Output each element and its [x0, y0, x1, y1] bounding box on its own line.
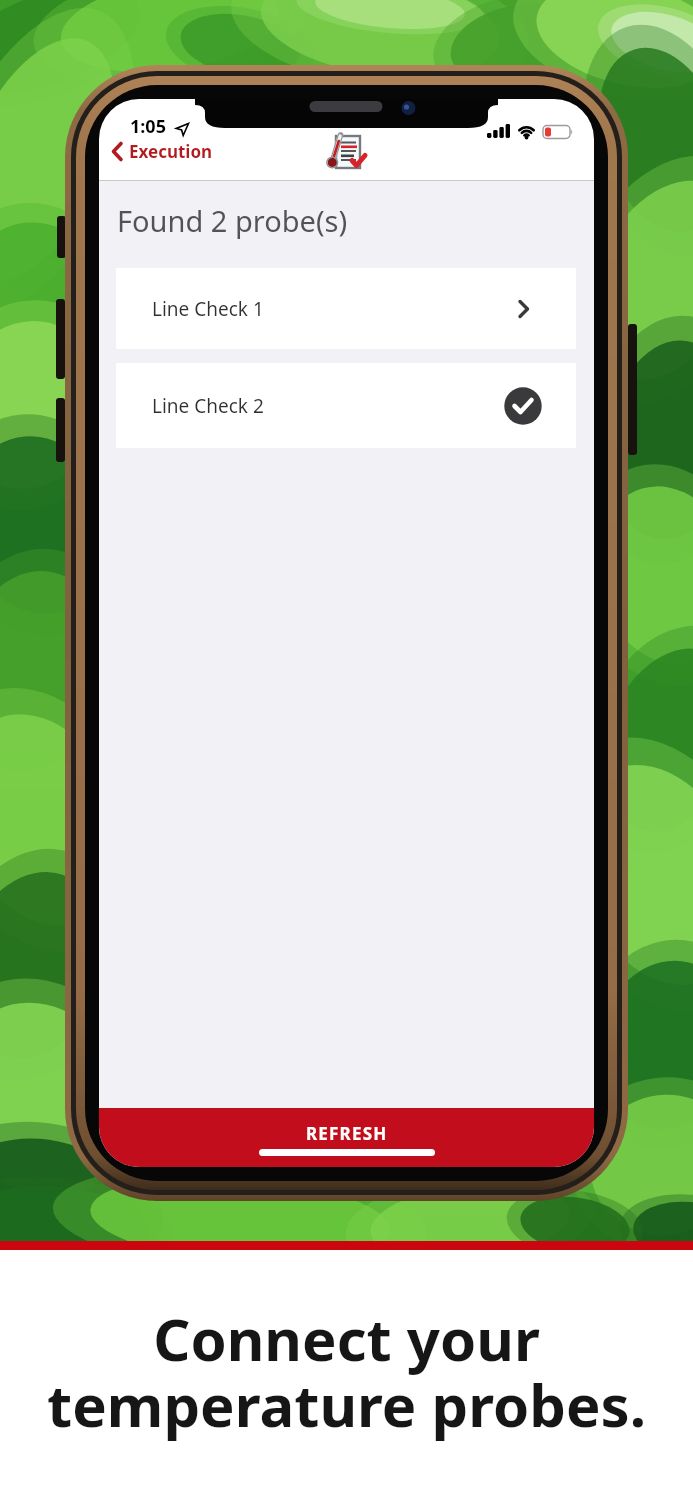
staticText: Line Check 1: [152, 296, 264, 322]
button[interactable]: Line Check 2: [116, 363, 576, 448]
button[interactable]: Execution: [111, 140, 213, 163]
staticText: Execution: [129, 140, 213, 163]
staticText: REFRESH: [306, 1122, 388, 1145]
staticText: Line Check 2: [152, 393, 264, 419]
staticText: 1:05: [130, 114, 166, 139]
staticText: Connect your: [0, 1299, 693, 1378]
staticText: temperature probes.: [0, 1365, 693, 1444]
button[interactable]: Line Check 1: [116, 268, 576, 349]
staticText: Found 2 probe(s): [117, 201, 348, 240]
button[interactable]: REFRESH: [99, 1108, 594, 1167]
